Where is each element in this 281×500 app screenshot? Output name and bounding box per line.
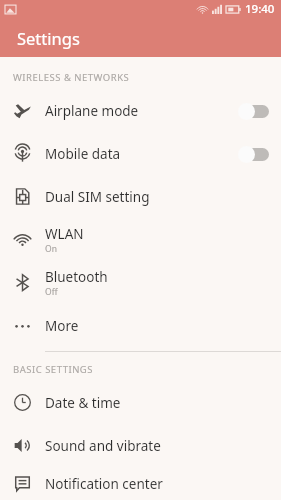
staticText: WIRELESS & NETWORKS: [13, 71, 130, 84]
staticText: 19:40: [245, 1, 275, 17]
button[interactable]: Airplane mode: [0, 89, 281, 132]
staticText: Bluetooth: [45, 268, 108, 286]
button[interactable]: Notification center: [0, 467, 281, 500]
button[interactable]: Date & time: [0, 381, 281, 424]
staticText: More: [45, 317, 79, 335]
staticText: Notification center: [45, 475, 163, 493]
button[interactable]: Airplane mode switch: [238, 101, 269, 121]
staticText: WLAN: [45, 225, 84, 243]
staticText: Mobile data: [45, 145, 121, 163]
button[interactable]: Sound and vibrate: [0, 424, 281, 467]
staticText: Settings: [17, 27, 80, 49]
staticText: Sound and vibrate: [45, 437, 161, 455]
button[interactable]: WLAN: [0, 218, 281, 261]
staticText: BASIC SETTINGS: [13, 363, 93, 376]
button[interactable]: More: [0, 304, 281, 347]
button[interactable]: Dual SIM setting: [0, 175, 281, 218]
button[interactable]: Settings: [0, 18, 281, 57]
staticText: On: [45, 243, 57, 255]
staticText: Dual SIM setting: [45, 188, 150, 206]
staticText: Date & time: [45, 394, 121, 412]
button[interactable]: Bluetooth: [0, 261, 281, 304]
staticText: Airplane mode: [45, 102, 139, 120]
button[interactable]: Mobile data: [0, 132, 281, 175]
button[interactable]: Mobile data switch: [238, 144, 269, 164]
staticText: Off: [45, 286, 58, 298]
